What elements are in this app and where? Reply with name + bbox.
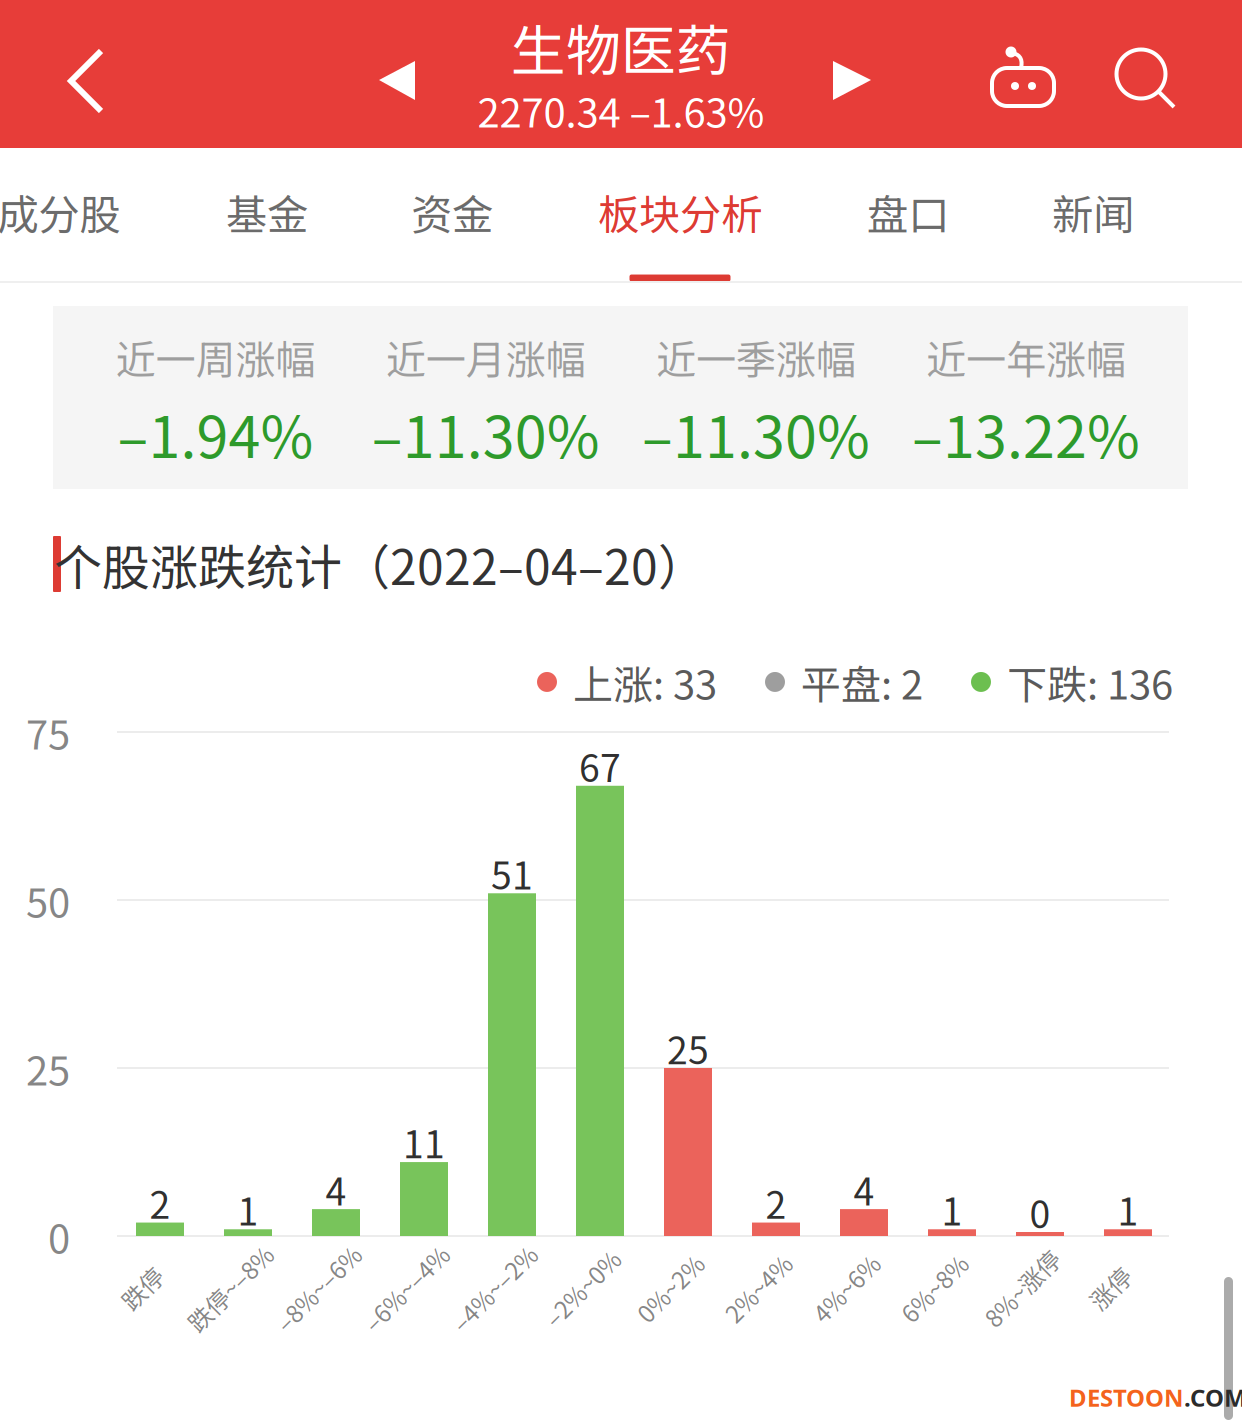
staticText: 51 xyxy=(491,846,533,900)
button[interactable]: Back xyxy=(21,0,151,148)
button[interactable]: 盘口 xyxy=(813,147,1003,277)
staticText: 2270.34 –1.63% xyxy=(477,81,764,139)
staticText: 近一季涨幅 xyxy=(656,328,856,386)
staticText: –13.22% xyxy=(912,391,1140,474)
staticText: 个股涨跌统计（2022–04–20） xyxy=(54,529,706,599)
staticText: 生物医药 xyxy=(511,7,731,87)
button[interactable]: 资金 xyxy=(357,147,547,277)
staticText: 6%~8% xyxy=(892,1271,975,1305)
staticText: 2 xyxy=(149,1175,170,1230)
button[interactable]: 基金 xyxy=(172,147,362,277)
staticText: 0%~2% xyxy=(628,1271,711,1305)
staticText: DESTOON xyxy=(1069,1381,1184,1414)
staticText: 4 xyxy=(325,1162,346,1216)
button[interactable]: Previous sector xyxy=(342,0,452,148)
staticText: –1.94% xyxy=(117,391,313,474)
button[interactable]: 板块分析 xyxy=(585,147,775,277)
staticText: 8%~涨停 xyxy=(974,1271,1070,1305)
staticText: 跌停~–8% xyxy=(175,1271,284,1305)
staticText: 0 xyxy=(1029,1185,1050,1239)
staticText: .COM xyxy=(1184,1381,1242,1414)
staticText: 2 xyxy=(765,1175,786,1230)
staticText: 50 xyxy=(26,871,70,929)
staticText: 近一年涨幅 xyxy=(926,328,1126,386)
staticText: 涨停 xyxy=(1086,1271,1134,1305)
staticText: –6%~–4% xyxy=(351,1271,460,1305)
staticText: –11.30% xyxy=(642,391,870,474)
staticText: 2%~4% xyxy=(716,1271,799,1305)
staticText: 25 xyxy=(26,1039,70,1097)
button[interactable]: Next sector xyxy=(796,0,906,148)
button[interactable]: Search xyxy=(1086,5,1206,153)
button[interactable]: AI assistant xyxy=(963,3,1083,151)
staticText: 成分股 xyxy=(0,182,120,242)
button[interactable]: 新闻 xyxy=(998,147,1188,277)
staticText: 板块分析 xyxy=(598,182,762,242)
staticText: 75 xyxy=(26,703,70,761)
staticText: 11 xyxy=(403,1115,445,1169)
button[interactable]: 成分股 xyxy=(0,147,154,277)
staticText: 下跌: 136 xyxy=(1007,653,1173,711)
staticText: 新闻 xyxy=(1052,182,1134,242)
staticText: –11.30% xyxy=(372,391,600,474)
staticText: –2%~0% xyxy=(534,1271,630,1305)
staticText: 1 xyxy=(1117,1182,1138,1236)
staticText: 平盘: 2 xyxy=(801,653,923,711)
staticText: 4 xyxy=(853,1162,874,1216)
staticText: 跌停 xyxy=(118,1271,166,1305)
staticText: 1 xyxy=(237,1182,258,1236)
staticText: 0 xyxy=(48,1207,70,1265)
staticText: 近一月涨幅 xyxy=(386,328,586,386)
staticText: 上涨: 33 xyxy=(573,653,717,711)
staticText: 资金 xyxy=(411,182,493,242)
staticText: 67 xyxy=(579,739,621,793)
staticText: 4%~6% xyxy=(804,1271,887,1305)
staticText: 近一周涨幅 xyxy=(115,328,315,386)
staticText: –8%~–6% xyxy=(263,1271,372,1305)
staticText: 盘口 xyxy=(867,182,949,242)
staticText: –4%~–2% xyxy=(439,1271,548,1305)
staticText: 1 xyxy=(941,1182,962,1236)
staticText: 基金 xyxy=(226,182,308,242)
staticText: 25 xyxy=(667,1021,709,1075)
